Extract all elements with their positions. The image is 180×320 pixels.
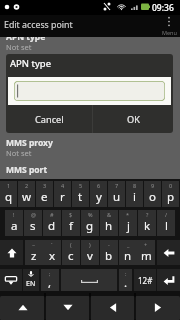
staticText: APN type [10, 57, 51, 70]
staticText: APN type [6, 31, 46, 43]
button[interactable]: Enter [157, 269, 180, 291]
staticText: a [11, 218, 18, 234]
button[interactable]: & [100, 210, 118, 236]
staticText: 8 [133, 182, 137, 189]
button[interactable]: MMS port [0, 164, 180, 180]
button[interactable]: Scroll up [0, 296, 45, 320]
button[interactable]: % [81, 210, 99, 236]
button[interactable]: : [119, 269, 132, 291]
staticText: t [78, 189, 83, 205]
button[interactable]: Move right [135, 296, 180, 320]
staticText: x [49, 248, 56, 264]
button[interactable]: Move left [90, 296, 135, 320]
staticText: : [125, 270, 127, 277]
button[interactable]: ~ [25, 240, 43, 265]
staticText: - [108, 241, 110, 248]
button[interactable]: Shift [0, 240, 23, 265]
staticText: i [133, 189, 136, 205]
staticText: e [41, 189, 48, 205]
staticText: _ [127, 241, 130, 248]
staticText: Not set [6, 42, 32, 52]
button[interactable]: _ [119, 240, 137, 265]
button[interactable]: ? [138, 210, 156, 236]
staticText: l [165, 218, 168, 234]
staticText: 3 [43, 182, 47, 189]
staticText: r [60, 189, 65, 205]
button[interactable]: * [119, 210, 137, 236]
button[interactable]: ( [62, 240, 80, 265]
staticText: n [124, 248, 132, 264]
button[interactable]: 4 [54, 181, 71, 207]
staticText: ~ [32, 241, 36, 248]
staticText: + [144, 241, 148, 248]
button[interactable]: Cancel [6, 105, 92, 133]
button[interactable]: MMS proxy [0, 137, 180, 159]
staticText: 09:36 [152, 2, 174, 14]
button[interactable]: ) [81, 240, 99, 265]
staticText: EN [26, 279, 36, 289]
button[interactable]: Voice input, English [23, 269, 39, 291]
staticText: o [149, 189, 156, 205]
button[interactable]: 5 [72, 181, 89, 207]
staticText: j [127, 218, 130, 234]
button[interactable]: @ [24, 210, 42, 236]
button[interactable]: 12# [134, 269, 156, 291]
button[interactable]: # [43, 210, 61, 236]
staticText: s [30, 218, 36, 234]
button[interactable] [14, 81, 165, 101]
button[interactable]: 1 [0, 181, 17, 207]
staticText: 2 [25, 182, 29, 189]
staticText: p [167, 189, 175, 205]
staticText: ` [51, 241, 53, 248]
staticText: z [31, 248, 37, 264]
button[interactable]: ; [41, 269, 59, 291]
button[interactable]: 8 [126, 181, 143, 207]
button[interactable]: / [157, 210, 175, 236]
staticText: h [105, 218, 113, 234]
staticText: Edit access point [4, 19, 73, 31]
staticText: Not set [6, 148, 32, 158]
staticText: ) [89, 241, 91, 248]
button[interactable]: Space [61, 269, 117, 291]
staticText: & [107, 211, 112, 218]
button[interactable]: 3 [36, 181, 53, 207]
button[interactable]: Menu [154, 15, 180, 37]
button[interactable]: $ [62, 210, 80, 236]
button[interactable]: Hide keyboard [0, 269, 22, 291]
button[interactable]: 9 [144, 181, 161, 207]
button[interactable]: APN type [0, 31, 180, 53]
staticText: 4 [61, 182, 65, 189]
staticText: % [88, 211, 93, 218]
staticText: d [48, 218, 56, 234]
button[interactable]: 2 [18, 181, 35, 207]
staticText: q [5, 189, 13, 205]
staticText: Cancel [35, 113, 64, 126]
button[interactable]: ! [5, 210, 23, 236]
button[interactable]: Scroll down [45, 296, 90, 320]
staticText: # [50, 211, 54, 218]
staticText: f [69, 218, 73, 234]
staticText: 0 [169, 182, 173, 189]
staticText: g [86, 218, 94, 234]
staticText: 5 [79, 182, 83, 189]
staticText: y [96, 189, 102, 205]
staticText: 7 [115, 182, 119, 189]
staticText: b [105, 248, 113, 264]
button[interactable]: ` [43, 240, 61, 265]
button[interactable]: OK [93, 105, 173, 133]
staticText: OK [127, 113, 140, 126]
staticText: MMS port [6, 164, 48, 176]
staticText: / [165, 211, 168, 218]
staticText: 9 [151, 182, 155, 189]
staticText: MMS proxy [6, 137, 53, 149]
staticText: c [68, 248, 74, 264]
staticText: @ [31, 211, 36, 218]
button[interactable]: 6 [90, 181, 107, 207]
button[interactable]: 7 [108, 181, 125, 207]
staticText: ( [70, 241, 72, 248]
button[interactable]: + [137, 240, 155, 265]
staticText: w [22, 189, 32, 205]
button[interactable]: Backspace [157, 240, 180, 265]
button[interactable]: - [100, 240, 118, 265]
button[interactable]: 0 [162, 181, 179, 207]
